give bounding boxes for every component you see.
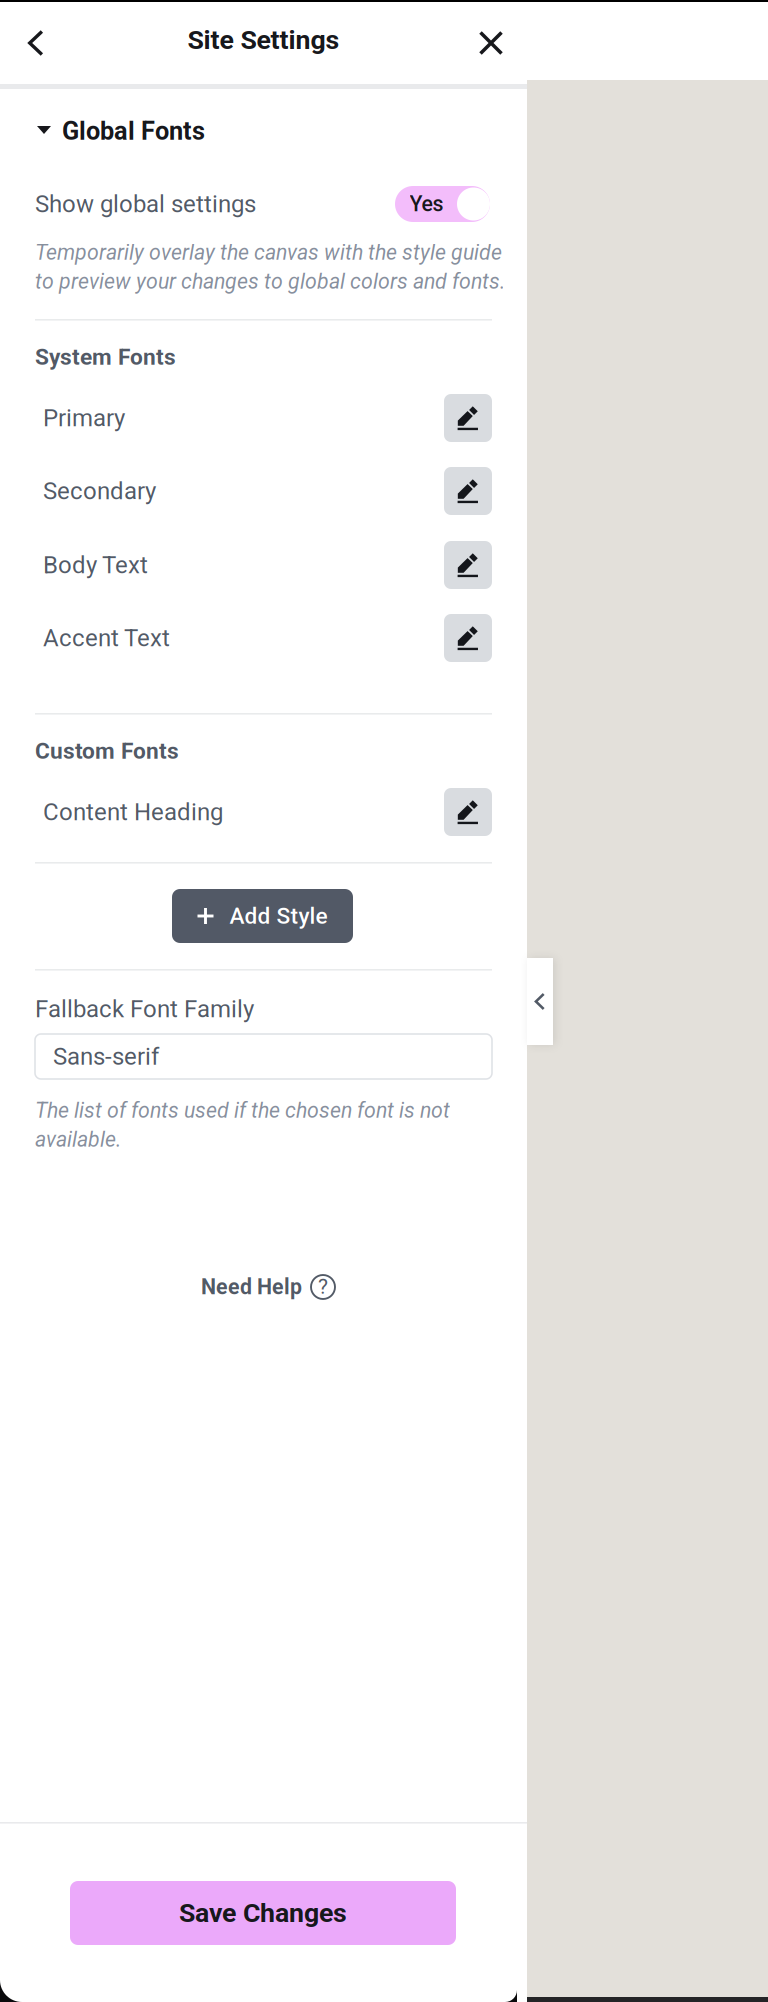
- button[interactable]: Need Help: [201, 1272, 335, 1302]
- staticText: Global Fonts: [62, 116, 205, 146]
- button[interactable]: Back: [11, 25, 61, 61]
- staticText: Body Text: [43, 551, 148, 579]
- staticText: to preview your changes to global colors…: [35, 269, 505, 294]
- button[interactable]: Add Style: [172, 889, 353, 943]
- staticText: Content Heading: [43, 798, 223, 826]
- button[interactable]: Edit Body Text: [444, 541, 492, 589]
- staticText: Need Help: [201, 1274, 302, 1299]
- staticText: Secondary: [43, 477, 156, 505]
- button[interactable]: Save Changes: [70, 1881, 456, 1945]
- staticText: ?: [318, 1274, 328, 1299]
- staticText: The list of fonts used if the chosen fon…: [35, 1098, 450, 1123]
- staticText: Primary: [43, 404, 125, 432]
- staticText: Fallback Font Family: [35, 995, 254, 1023]
- button[interactable]: Edit Accent Text: [444, 614, 492, 662]
- staticText: Site Settings: [187, 24, 339, 56]
- staticText: Yes: [409, 191, 443, 216]
- staticText: Save Changes: [179, 1897, 347, 1929]
- staticText: Add Style: [229, 903, 327, 929]
- button[interactable]: Show global settings: [395, 186, 490, 222]
- button[interactable]: Collapse panel: [527, 958, 553, 1045]
- staticText: Sans-serif: [53, 1042, 159, 1070]
- button[interactable]: Close: [472, 25, 510, 61]
- staticText: Accent Text: [43, 624, 170, 652]
- button[interactable]: Edit Secondary: [444, 467, 492, 515]
- staticText: Show global settings: [35, 190, 256, 218]
- staticText: System Fonts: [35, 344, 176, 370]
- button[interactable]: Edit Primary: [444, 394, 492, 442]
- staticText: Temporarily overlay the canvas with the …: [35, 240, 502, 265]
- button[interactable]: Global Fonts: [37, 118, 205, 144]
- staticText: Custom Fonts: [35, 738, 179, 764]
- staticText: available.: [35, 1127, 121, 1152]
- button[interactable]: Edit Content Heading: [444, 788, 492, 836]
- button[interactable]: Fallback font family: [35, 1034, 492, 1079]
